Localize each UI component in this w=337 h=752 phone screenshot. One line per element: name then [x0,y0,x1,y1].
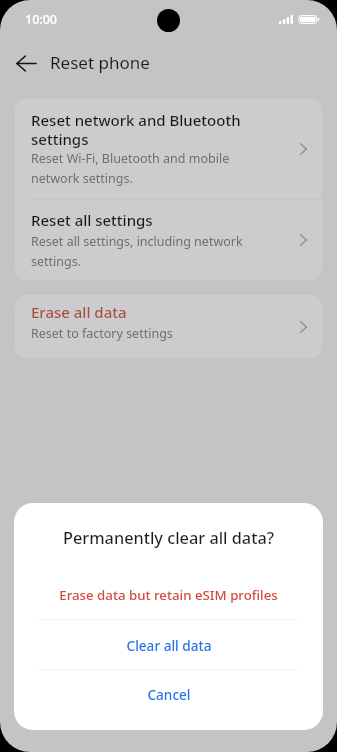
staticText: Cancel [147,685,191,704]
staticText: Erase all data [31,302,127,322]
staticText: Reset all settings [31,210,153,230]
button[interactable]: Reset all settings [15,200,322,280]
staticText: Permanently clear all data? [14,527,323,549]
staticText: Reset all settings, including network se… [31,233,269,270]
button[interactable]: Reset network and Bluetooth settings [15,99,322,199]
staticText: Clear all data [126,636,212,655]
staticText: 10:00 [25,11,58,28]
staticText: Reset phone [50,51,150,74]
staticText: Erase data but retain eSIM profiles [59,586,278,604]
staticText: Reset network and Bluetooth settings [31,110,269,150]
button[interactable]: Erase all data [15,295,322,358]
staticText: Reset to factory settings [31,325,173,342]
button[interactable]: Cancel [14,670,323,719]
staticText: Reset Wi-Fi, Bluetooth and mobile networ… [31,150,269,187]
button[interactable]: Clear all data [14,621,323,670]
button[interactable]: Back [6,43,46,83]
button[interactable]: Erase data but retain eSIM profiles [14,572,323,618]
